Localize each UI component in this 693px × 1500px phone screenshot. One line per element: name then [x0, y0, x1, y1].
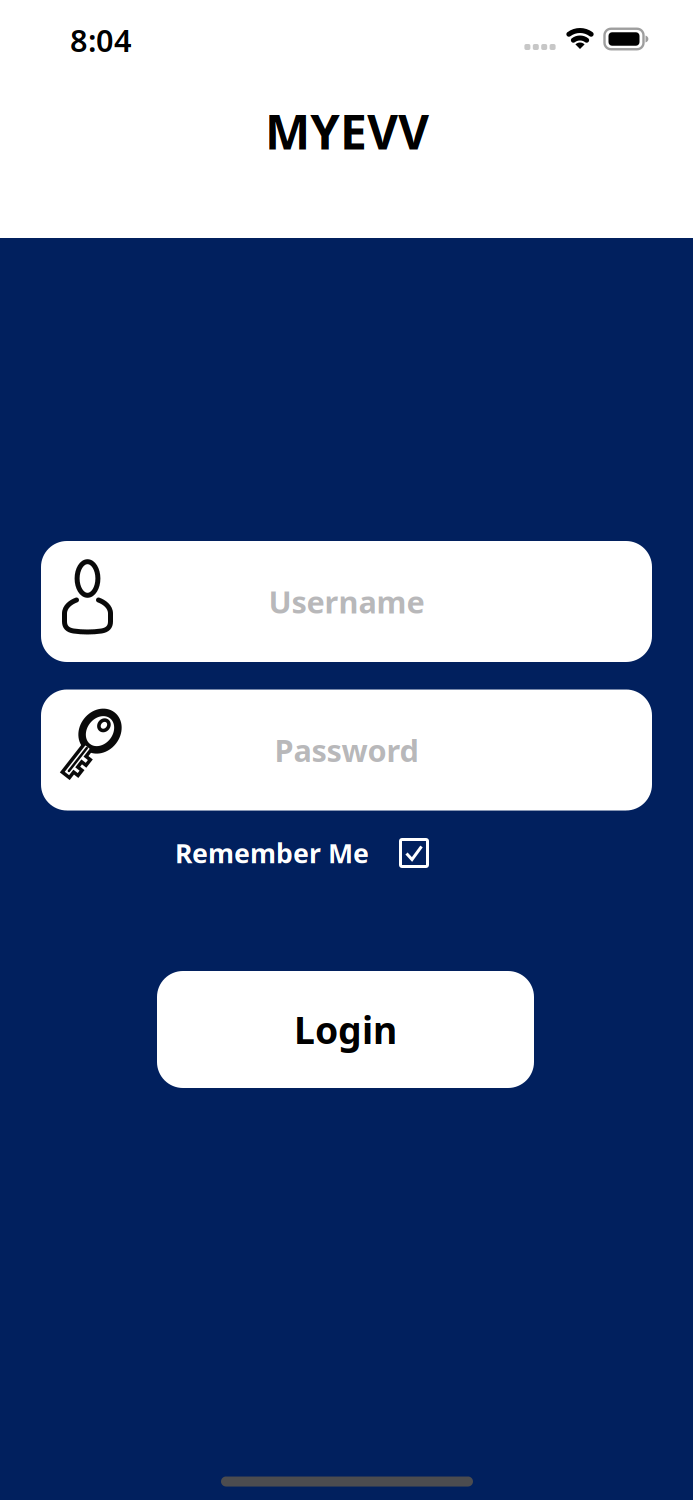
- button[interactable]: Login: [157, 971, 534, 1088]
- staticText: 8:04: [70, 20, 132, 60]
- button[interactable]: Remember Me checkbox: [399, 838, 429, 868]
- staticText: Remember Me: [175, 835, 369, 871]
- button[interactable]: Username: [41, 541, 652, 662]
- staticText: Login: [294, 1005, 397, 1054]
- staticText: Password: [274, 730, 418, 770]
- staticText: MYEVV: [265, 99, 429, 163]
- staticText: Username: [268, 581, 424, 622]
- button[interactable]: Password: [41, 689, 652, 810]
